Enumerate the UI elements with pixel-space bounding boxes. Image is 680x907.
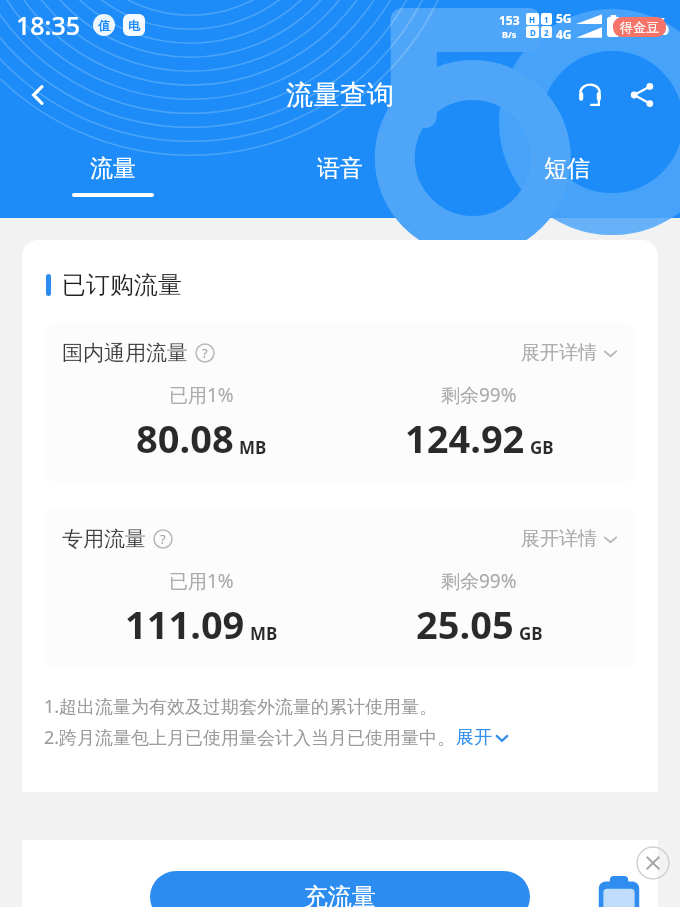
button[interactable]: Close: [636, 846, 670, 880]
staticText: ?: [160, 530, 166, 548]
staticText: 2: [544, 27, 549, 38]
button[interactable]: 短信: [453, 146, 680, 193]
staticText: B/s: [502, 28, 517, 40]
staticText: GB: [519, 622, 543, 645]
staticText: 80.08: [136, 412, 234, 464]
staticText: 展开: [456, 726, 492, 749]
staticText: 得金豆: [620, 19, 659, 35]
button[interactable]: 语音: [226, 146, 453, 193]
staticText: 语音: [317, 154, 363, 183]
staticText: 值: [98, 18, 110, 33]
staticText: 153: [499, 12, 520, 28]
staticText: 1.超出流量为有效及过期套外流量的累计使用量。: [44, 694, 438, 719]
staticText: 剩余99%: [441, 568, 517, 594]
button[interactable]: Share: [618, 71, 666, 119]
staticText: 短信: [544, 154, 590, 183]
staticText: 已订购流量: [62, 270, 182, 300]
button[interactable]: 展开详情: [521, 527, 618, 551]
staticText: GB: [530, 436, 554, 459]
staticText: MB: [250, 622, 278, 645]
button[interactable]: 得金豆: [613, 17, 666, 37]
staticText: MB: [239, 436, 267, 459]
button[interactable]: Customer service: [566, 71, 614, 119]
button[interactable]: 展开: [456, 726, 509, 749]
staticText: 流量: [90, 154, 136, 183]
staticText: 63%: [620, 9, 670, 42]
button[interactable]: Back: [14, 71, 62, 119]
staticText: 4G: [556, 26, 572, 42]
staticText: 25.05: [416, 598, 514, 650]
button[interactable]: 展开详情: [521, 341, 618, 365]
staticText: 国内通用流量: [62, 340, 188, 366]
button[interactable]: 流量: [0, 146, 226, 197]
staticText: 充流量: [304, 882, 376, 907]
staticText: 展开详情: [521, 527, 597, 551]
staticText: D: [530, 27, 536, 38]
staticText: 展开详情: [521, 341, 597, 365]
staticText: 18:35: [16, 8, 81, 42]
staticText: 5G: [556, 10, 572, 26]
staticText: 已用1%: [169, 568, 234, 594]
button[interactable]: Forms: [596, 875, 642, 907]
staticText: 专用流量: [62, 526, 146, 552]
staticText: 剩余99%: [441, 382, 517, 408]
button[interactable]: 国内通用流量: [44, 322, 636, 482]
staticText: 已用1%: [169, 382, 234, 408]
staticText: 1: [544, 14, 549, 25]
staticText: 电: [128, 18, 140, 33]
staticText: 2.跨月流量包上月已使用量会计入当月已使用量中。: [44, 725, 456, 750]
staticText: 124.92: [405, 412, 525, 464]
staticText: ?: [202, 344, 208, 362]
staticText: 流量查询: [286, 78, 394, 112]
button[interactable]: 充流量: [150, 871, 530, 907]
staticText: 111.09: [125, 598, 245, 650]
staticText: H: [529, 14, 536, 25]
button[interactable]: 专用流量: [44, 508, 636, 668]
